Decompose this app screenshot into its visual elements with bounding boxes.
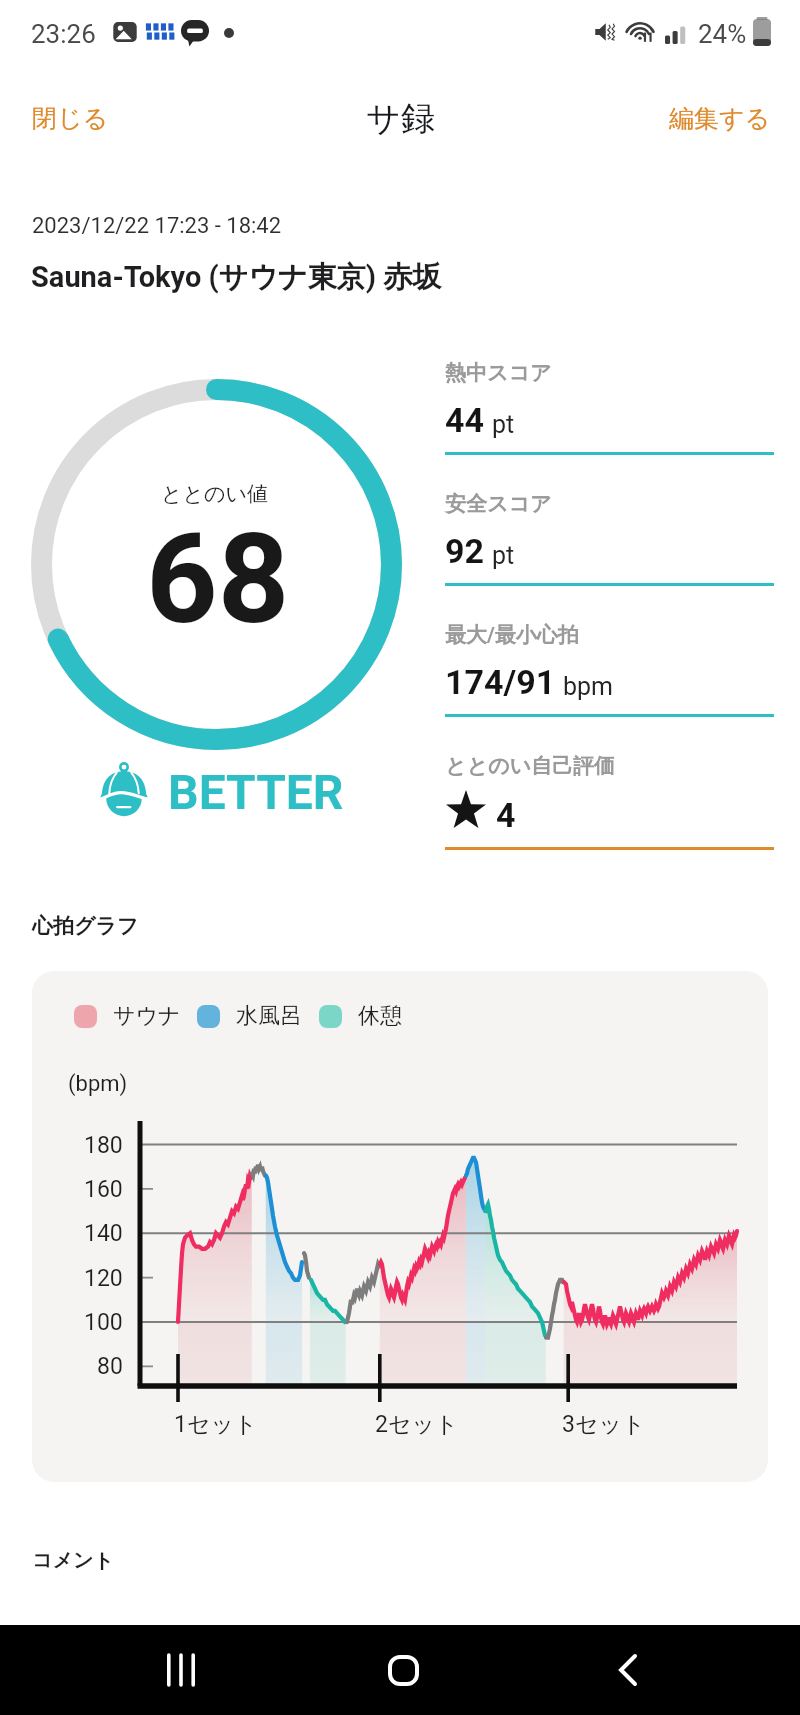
staticText: Sauna-Tokyo (サウナ東京) 赤坂 bbox=[31, 259, 442, 296]
staticText: bpm bbox=[563, 672, 613, 701]
staticText: 水風呂 bbox=[236, 1002, 302, 1030]
staticText: サウナ bbox=[113, 1002, 181, 1030]
staticText: 23:26 bbox=[31, 19, 96, 49]
button[interactable]: ととのい自己評価 bbox=[445, 753, 774, 886]
staticText: 68 bbox=[146, 506, 290, 652]
button[interactable]: Back bbox=[589, 1631, 667, 1709]
staticText: 100 bbox=[84, 1309, 123, 1336]
staticText: pt bbox=[492, 410, 515, 439]
button[interactable]: 最大/最小心拍 bbox=[445, 622, 774, 753]
staticText: サ録 bbox=[366, 97, 435, 140]
staticText: 4 bbox=[496, 795, 516, 835]
staticText: 休憩 bbox=[358, 1002, 402, 1030]
staticText: BETTER bbox=[168, 764, 344, 820]
staticText: pt bbox=[492, 541, 515, 570]
staticText: 3セット bbox=[562, 1410, 646, 1439]
staticText: 2セット bbox=[375, 1410, 459, 1439]
staticText: (bpm) bbox=[68, 1071, 128, 1097]
button[interactable]: Recent apps bbox=[142, 1631, 220, 1709]
button[interactable]: サウナ bbox=[74, 1002, 181, 1030]
staticText: 120 bbox=[84, 1265, 123, 1292]
staticText: 180 bbox=[84, 1132, 123, 1159]
staticText: 2023/12/22 17:23 - 18:42 bbox=[32, 213, 282, 239]
staticText: 44 bbox=[445, 400, 485, 440]
staticText: 92 bbox=[445, 531, 485, 571]
staticText: 24% bbox=[698, 19, 747, 49]
button[interactable]: 編集する bbox=[640, 89, 800, 148]
staticText: 安全スコア bbox=[445, 491, 552, 517]
button[interactable]: 閉じる bbox=[0, 89, 141, 148]
button[interactable]: 水風呂 bbox=[197, 1002, 302, 1030]
staticText: 編集する bbox=[669, 103, 771, 134]
staticText: 140 bbox=[84, 1220, 123, 1247]
staticText: 80 bbox=[97, 1353, 123, 1380]
button[interactable]: Home bbox=[364, 1631, 442, 1709]
button[interactable]: 休憩 bbox=[319, 1002, 402, 1030]
staticText: ととのい値 bbox=[161, 481, 268, 507]
button[interactable]: 熱中スコア bbox=[445, 360, 774, 491]
staticText: 174/91 bbox=[445, 662, 556, 702]
staticText: コメント bbox=[32, 1548, 114, 1573]
staticText: ととのい自己評価 bbox=[445, 753, 615, 779]
staticText: 1セット bbox=[174, 1410, 258, 1439]
staticText: 熱中スコア bbox=[445, 360, 552, 386]
staticText: 最大/最小心拍 bbox=[445, 622, 579, 648]
staticText: 心拍グラフ bbox=[32, 913, 139, 939]
button[interactable]: 安全スコア bbox=[445, 491, 774, 622]
staticText: 160 bbox=[84, 1176, 123, 1203]
staticText: 閉じる bbox=[32, 103, 109, 134]
